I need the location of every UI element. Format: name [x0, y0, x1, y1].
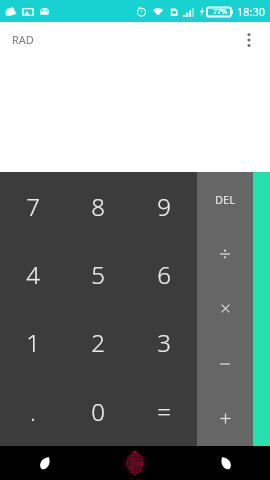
staticText: 9: [157, 190, 171, 223]
button[interactable]: 7: [0, 172, 65, 240]
staticText: 6: [157, 258, 171, 291]
button[interactable]: plus: [197, 391, 253, 446]
button[interactable]: Home: [90, 446, 180, 480]
button[interactable]: 0: [65, 377, 131, 446]
staticText: 77%: [213, 7, 228, 17]
button[interactable]: divide: [197, 226, 253, 281]
staticText: .: [30, 397, 36, 427]
button[interactable]: 8: [65, 172, 131, 240]
button[interactable]: 6: [131, 240, 197, 308]
button[interactable]: 9: [131, 172, 197, 240]
staticText: RAD: [12, 32, 34, 47]
staticText: 5: [91, 258, 105, 291]
staticText: 1: [26, 326, 40, 359]
button[interactable]: .: [0, 377, 65, 446]
staticText: DEL: [215, 192, 235, 207]
staticText: 3: [157, 326, 171, 359]
button[interactable]: =: [131, 377, 197, 446]
button[interactable]: multiply: [197, 281, 253, 336]
staticText: 2: [91, 326, 105, 359]
button[interactable]: More options: [234, 25, 264, 55]
staticText: 4: [26, 258, 40, 291]
staticText: 18:30: [237, 4, 266, 19]
button[interactable]: RAD: [0, 26, 46, 53]
button[interactable]: Recent apps: [180, 446, 270, 480]
staticText: 7: [26, 190, 40, 223]
button[interactable]: 4: [0, 240, 65, 308]
button[interactable]: 3: [131, 308, 197, 377]
staticText: =: [157, 395, 171, 428]
button[interactable]: 1: [0, 308, 65, 377]
button[interactable]: minus: [197, 336, 253, 391]
staticText: 0: [91, 395, 105, 428]
button[interactable]: DEL: [197, 172, 253, 226]
button[interactable]: Back: [0, 446, 90, 480]
button[interactable]: 2: [65, 308, 131, 377]
button[interactable]: 5: [65, 240, 131, 308]
staticText: 8: [91, 190, 105, 223]
